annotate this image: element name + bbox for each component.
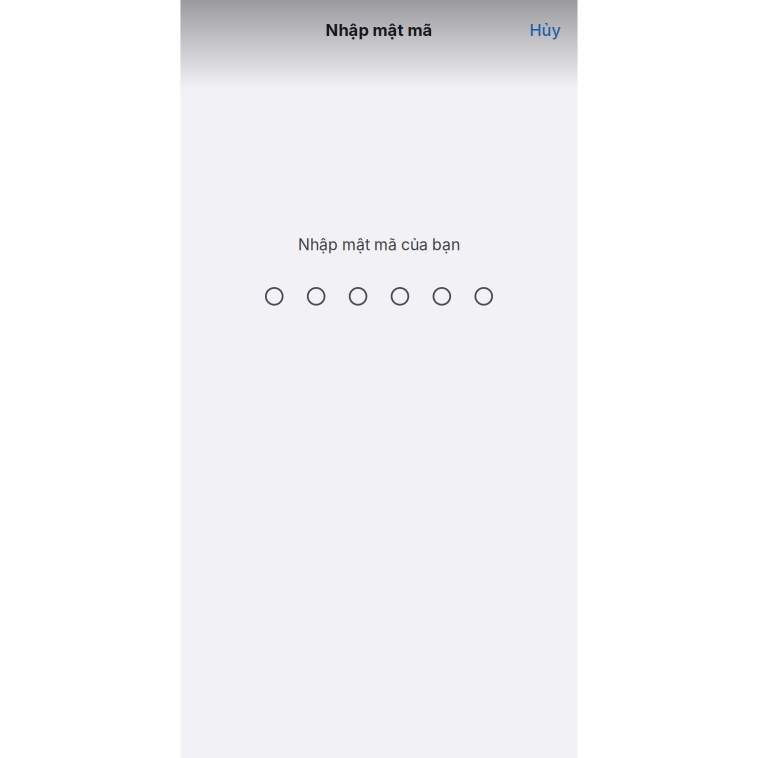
staticText: Hủy bbox=[529, 20, 560, 40]
staticText: Nhập mật mã bbox=[325, 20, 432, 40]
button[interactable]: Hủy bbox=[521, 14, 568, 46]
staticText: Nhập mật mã của bạn bbox=[298, 235, 460, 254]
